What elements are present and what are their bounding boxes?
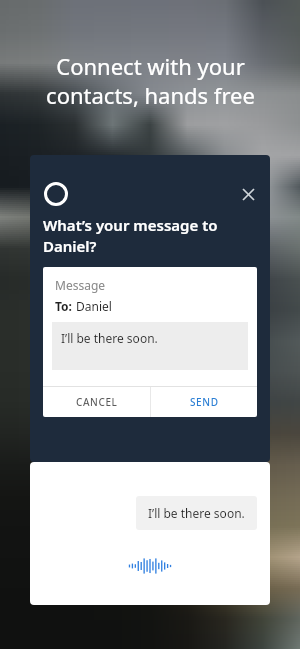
staticText: I’ll be there soon. <box>61 330 158 346</box>
button[interactable]: CANCEL <box>43 387 150 417</box>
staticText: What’s your message to Daniel? <box>43 215 261 257</box>
staticText: Connect with your contacts, hands free <box>46 51 255 110</box>
staticText: I’ll be there soon. <box>148 505 245 521</box>
staticText: Daniel <box>76 298 112 314</box>
button[interactable]: Cortana assistant <box>42 180 70 208</box>
button[interactable]: Close <box>237 183 259 205</box>
button[interactable]: SEND <box>151 387 257 417</box>
staticText: Message <box>55 277 106 293</box>
staticText: SEND <box>190 395 219 409</box>
staticText: To: <box>55 298 76 314</box>
staticText: CANCEL <box>76 395 118 409</box>
